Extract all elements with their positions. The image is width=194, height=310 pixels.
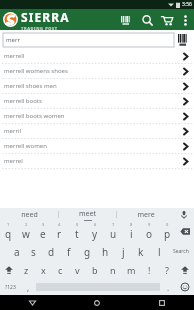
button[interactable]: Home	[64, 295, 129, 310]
button[interactable]: 3	[34, 221, 51, 242]
button[interactable]: need	[0, 208, 58, 221]
staticText: s	[31, 245, 36, 259]
button[interactable]: z	[18, 261, 35, 279]
button[interactable]: 6	[86, 221, 104, 242]
staticText: 4	[58, 222, 61, 227]
button[interactable]: Shift	[0, 261, 18, 279]
staticText: merrell women	[4, 142, 181, 150]
button[interactable]: s	[25, 242, 42, 261]
button[interactable]: merr	[3, 33, 174, 47]
staticText: i	[130, 227, 133, 241]
button[interactable]: n	[104, 261, 122, 279]
button[interactable]: merril	[0, 124, 194, 139]
button[interactable]: merrel	[0, 154, 194, 169]
staticText: d	[48, 245, 55, 259]
staticText: merrell boots	[4, 97, 181, 105]
button[interactable]: 2	[17, 221, 34, 242]
staticText: v	[75, 264, 80, 276]
staticText: j	[122, 245, 125, 259]
button[interactable]: k	[132, 242, 150, 261]
staticText: r	[57, 227, 62, 241]
staticText: mere	[137, 210, 155, 220]
button[interactable]: x	[35, 261, 52, 279]
staticText: x	[41, 264, 46, 276]
staticText: e	[40, 227, 46, 241]
button[interactable]: ?	[158, 261, 176, 279]
staticText: a	[14, 245, 20, 259]
staticText: merrell boots women	[4, 112, 181, 120]
button[interactable]: 4	[51, 221, 68, 242]
button[interactable]: Search	[137, 10, 157, 30]
staticText: 5	[76, 222, 79, 227]
staticText: f	[67, 245, 71, 259]
staticText: 3	[42, 222, 45, 227]
staticText: ?123	[5, 284, 16, 291]
button[interactable]: j	[114, 242, 132, 261]
staticText: SIERRA	[21, 9, 70, 25]
staticText: y	[92, 227, 98, 241]
button[interactable]: 1	[0, 221, 17, 242]
button[interactable]: Scan	[177, 33, 191, 47]
staticText: need	[21, 210, 38, 220]
button[interactable]: mere	[117, 208, 174, 221]
button[interactable]: 5	[68, 221, 86, 242]
button[interactable]: m	[122, 261, 140, 279]
button[interactable]: merrell womens shoes	[0, 64, 194, 79]
button[interactable]: a	[8, 242, 25, 261]
staticText: 9	[148, 222, 151, 227]
staticText: g	[84, 245, 91, 259]
button[interactable]: merrell shoes men	[0, 79, 194, 94]
button[interactable]: 8	[122, 221, 140, 242]
button[interactable]: 7	[104, 221, 122, 242]
staticText: TRADING POST	[21, 26, 58, 30]
staticText: 0	[166, 222, 169, 227]
button[interactable]: Backspace	[176, 221, 194, 242]
button[interactable]: d	[42, 242, 60, 261]
button[interactable]: c	[52, 261, 69, 279]
button[interactable]: Shift	[176, 261, 194, 279]
button[interactable]: !	[140, 261, 158, 279]
staticText: 3:56	[182, 1, 192, 8]
staticText: ,	[27, 282, 30, 293]
button[interactable]: merrell women	[0, 139, 194, 154]
staticText: q	[5, 227, 12, 241]
staticText: n	[110, 264, 116, 276]
button[interactable]: g	[78, 242, 96, 261]
button[interactable]: Emoji	[176, 279, 194, 295]
button[interactable]: Recent apps	[129, 295, 194, 310]
button[interactable]: meet	[59, 208, 116, 221]
button[interactable]: l	[150, 242, 168, 261]
staticText: m	[127, 264, 136, 276]
button[interactable]: .	[160, 279, 176, 295]
staticText: c	[58, 264, 63, 276]
staticText: 2	[25, 222, 28, 227]
staticText: k	[138, 245, 144, 259]
staticText: 8	[130, 222, 133, 227]
staticText: merrell shoes men	[4, 82, 181, 90]
button[interactable]: ?123	[0, 279, 20, 295]
staticText: t	[75, 227, 79, 241]
button[interactable]: Back	[0, 295, 64, 310]
button[interactable]: More options	[177, 12, 193, 28]
button[interactable]: merrell boots	[0, 94, 194, 109]
button[interactable]: h	[96, 242, 114, 261]
button[interactable]: 0	[158, 221, 176, 242]
button[interactable]: Cart	[157, 10, 177, 30]
button[interactable]: b	[86, 261, 104, 279]
button[interactable]: f	[60, 242, 78, 261]
staticText: 1	[7, 222, 10, 227]
button[interactable]: merrell	[0, 49, 194, 64]
button[interactable]: merrell boots women	[0, 109, 194, 124]
button[interactable]: 9	[140, 221, 158, 242]
button[interactable]: Search	[168, 242, 194, 261]
button[interactable]: Scan barcode	[117, 10, 137, 30]
staticText: merril	[4, 127, 181, 135]
button[interactable]: v	[69, 261, 86, 279]
staticText: l	[158, 245, 161, 259]
staticText: ?	[165, 264, 169, 276]
button[interactable]: ,	[20, 279, 36, 295]
button[interactable]: Voice input	[174, 208, 194, 221]
staticText: w	[22, 227, 30, 241]
staticText: Search	[173, 248, 189, 255]
